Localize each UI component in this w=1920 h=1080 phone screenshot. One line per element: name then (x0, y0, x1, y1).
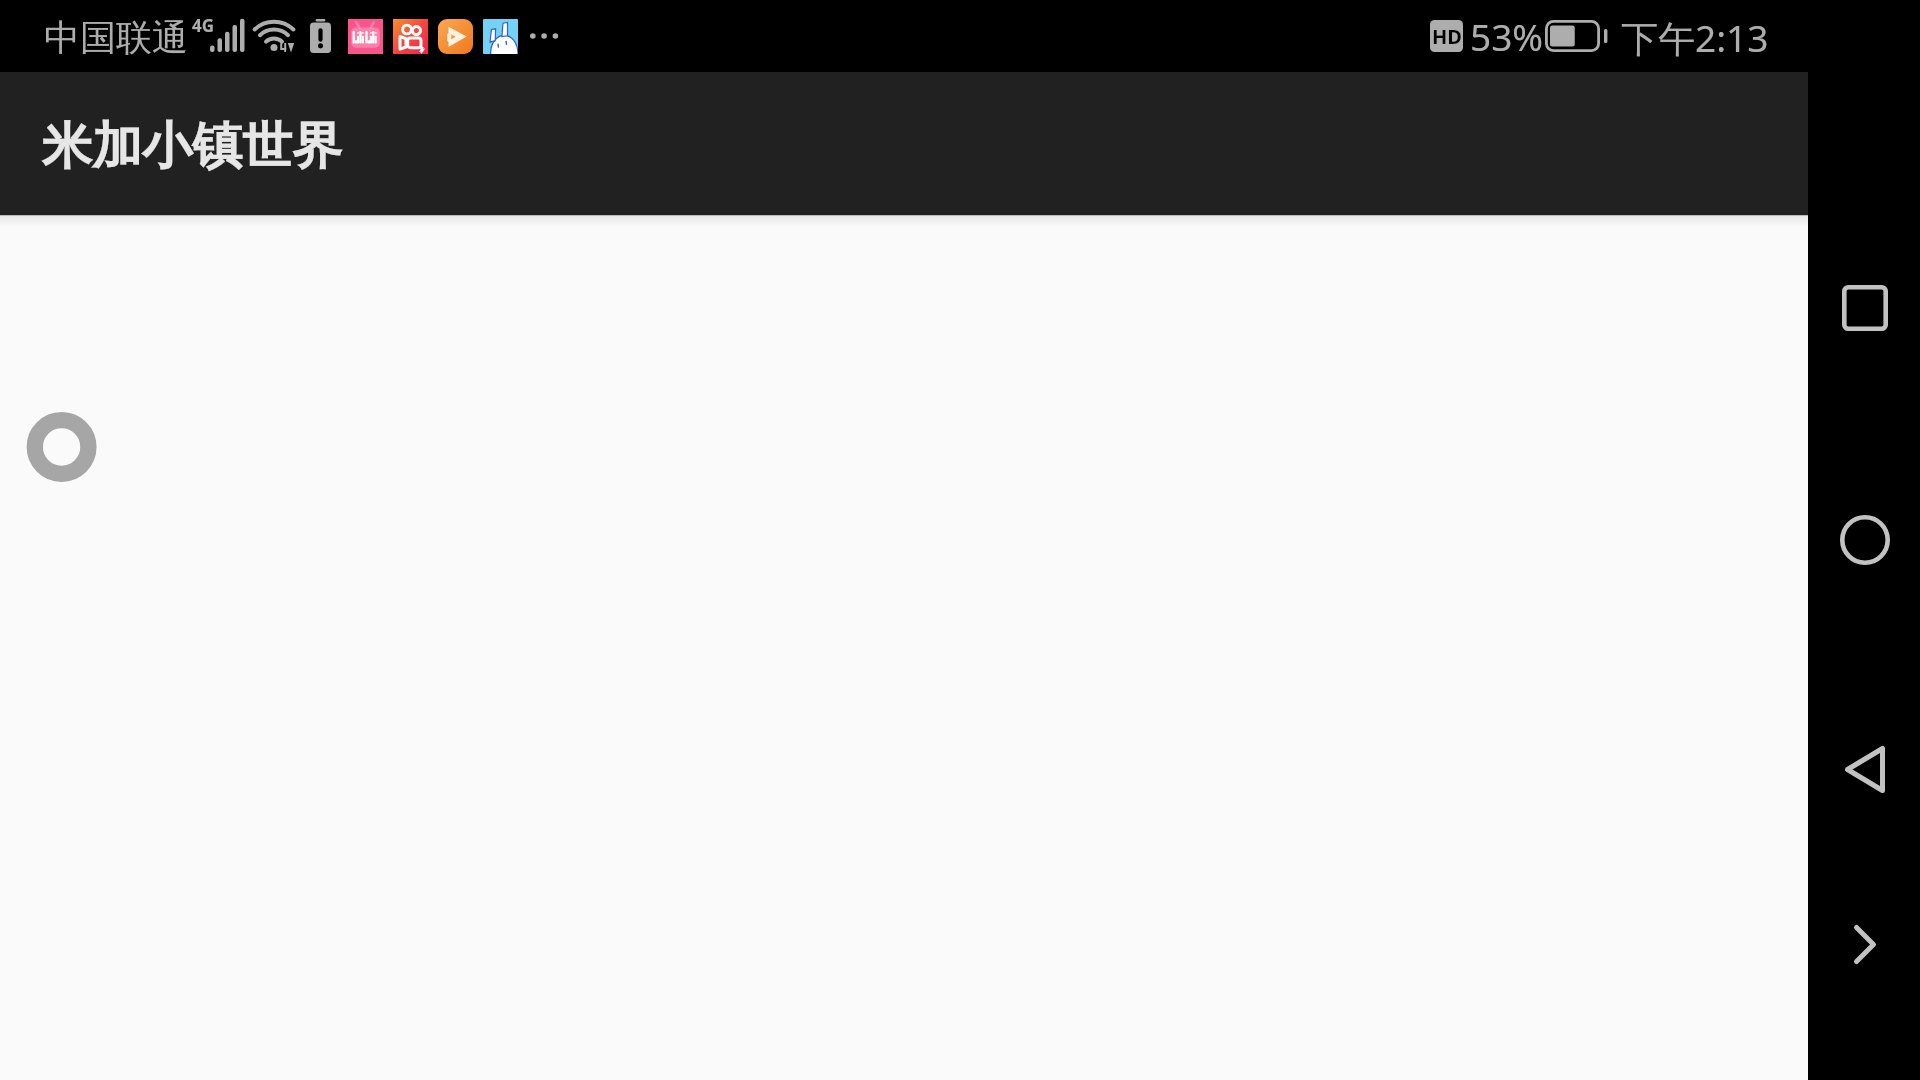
button[interactable]: 米加小镇世界 (0, 72, 1808, 215)
staticText: HD (1432, 23, 1462, 50)
button[interactable]: Hide navigation bar (1820, 899, 1910, 989)
button[interactable]: Back (1820, 724, 1910, 814)
button[interactable]: Recents (1820, 263, 1910, 353)
button[interactable]: Home (1820, 495, 1910, 585)
staticText: 53% (1470, 11, 1544, 61)
staticText: 下午2:13 (1621, 12, 1769, 63)
staticText: 米加小镇世界 (42, 115, 342, 178)
staticText: 中国联通 (44, 15, 188, 60)
staticText: 4G (192, 14, 215, 37)
